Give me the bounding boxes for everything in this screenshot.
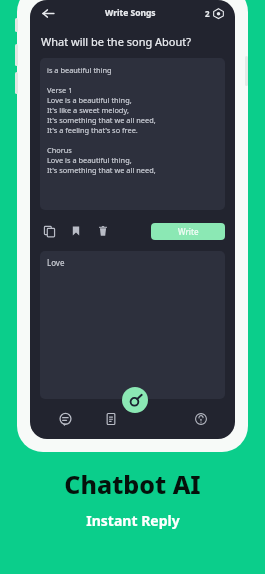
staticText: It's something that we all need, bbox=[47, 115, 156, 125]
staticText: Chatbot AI bbox=[64, 467, 201, 501]
staticText: What will be the song About? bbox=[41, 34, 192, 49]
button[interactable]: is a beautiful thing bbox=[40, 58, 225, 210]
button[interactable]: Write bbox=[151, 223, 225, 240]
staticText: Write Songs bbox=[105, 7, 156, 19]
staticText: is a beautiful thing bbox=[47, 65, 112, 75]
staticText: Chorus bbox=[47, 145, 72, 155]
staticText: Verse 1 bbox=[47, 85, 73, 95]
staticText: 2 bbox=[205, 8, 210, 19]
staticText: Write bbox=[178, 226, 199, 237]
staticText: Instant Reply bbox=[86, 511, 180, 530]
staticText: Love is a beautiful thing, bbox=[47, 155, 132, 165]
button[interactable]: Help bbox=[178, 402, 223, 436]
button[interactable]: Copy bbox=[40, 222, 58, 240]
button[interactable]: Documents bbox=[88, 402, 133, 436]
button[interactable]: New chat bbox=[122, 387, 148, 413]
staticText: It's a feeling that's so free. bbox=[47, 125, 138, 135]
button[interactable]: Back bbox=[39, 4, 57, 22]
button[interactable]: Bookmark bbox=[67, 222, 85, 240]
button[interactable]: Love bbox=[40, 251, 225, 399]
button[interactable]: Chat bbox=[42, 402, 88, 436]
staticText: It's something that we all need, bbox=[47, 165, 156, 175]
staticText: It's like a sweet melody, bbox=[47, 105, 129, 115]
button[interactable]: Delete bbox=[94, 222, 112, 240]
button[interactable]: 2 bbox=[203, 8, 226, 19]
staticText: Love bbox=[47, 257, 65, 268]
staticText: Love is a beautiful thing, bbox=[47, 95, 132, 105]
other: Credits bbox=[213, 8, 224, 19]
